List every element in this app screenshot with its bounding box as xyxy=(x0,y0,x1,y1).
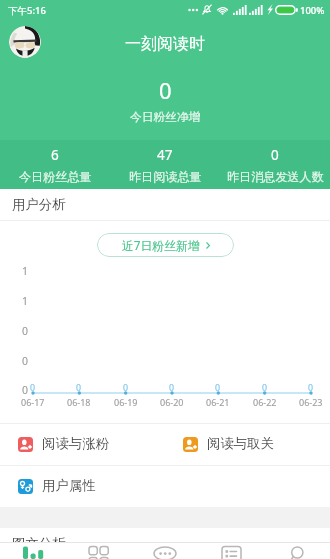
button[interactable]: 近7日粉丝新增 xyxy=(97,233,234,257)
staticText: 用户属性 xyxy=(42,477,96,494)
staticText: 47 xyxy=(157,146,173,164)
staticText: 0 xyxy=(262,382,268,394)
button[interactable]: Messages xyxy=(132,545,198,559)
button[interactable]: List xyxy=(198,545,264,559)
staticText: 下午5:16 xyxy=(8,4,46,17)
staticText: 06-23 xyxy=(299,396,323,408)
button[interactable]: Search xyxy=(264,545,330,559)
staticText: 0 xyxy=(308,382,314,394)
staticText: 1 xyxy=(22,294,29,308)
staticText: 近7日粉丝新增 xyxy=(122,237,200,253)
staticText: 0 xyxy=(123,382,129,394)
staticText: 0 xyxy=(159,75,172,105)
staticText: 阅读与取关 xyxy=(207,435,274,452)
button[interactable]: Profile xyxy=(9,26,41,58)
staticText: 06-18 xyxy=(67,396,91,408)
staticText: 昨日消息发送人数 xyxy=(227,169,324,184)
staticText: 阅读与涨粉 xyxy=(42,435,109,452)
button[interactable]: Statistics xyxy=(0,545,66,559)
staticText: 6 xyxy=(51,146,59,164)
button[interactable]: 47 xyxy=(110,146,220,184)
staticText: 0 xyxy=(22,354,29,368)
staticText: 一刻阅读时 xyxy=(125,34,205,54)
staticText: 今日粉丝净增 xyxy=(130,110,201,125)
staticText: 0 xyxy=(22,383,29,397)
staticText: 06-20 xyxy=(160,396,184,408)
staticText: 今日粉丝总量 xyxy=(19,169,92,184)
button[interactable]: 阅读与涨粉 xyxy=(0,424,165,465)
staticText: 0 xyxy=(169,382,175,394)
staticText: 用户分析 xyxy=(12,196,66,213)
staticText: 06-21 xyxy=(206,396,230,408)
staticText: 06-19 xyxy=(114,396,138,408)
staticText: 昨日阅读总量 xyxy=(129,169,202,184)
staticText: 0 xyxy=(76,382,82,394)
button[interactable]: 用户属性 xyxy=(0,466,165,507)
button[interactable]: 6 xyxy=(0,146,110,184)
staticText: 0 xyxy=(271,146,279,164)
staticText: 0 xyxy=(22,324,29,338)
staticText: 100% xyxy=(300,4,325,17)
button[interactable]: 0 xyxy=(220,146,330,184)
staticText: 06-22 xyxy=(253,396,277,408)
staticText: 06-17 xyxy=(21,396,45,408)
staticText: 0 xyxy=(30,382,36,394)
staticText: 0 xyxy=(215,382,221,394)
staticText: 1 xyxy=(22,264,29,278)
staticText: 图文分析 xyxy=(12,535,66,542)
button[interactable]: Apps xyxy=(66,545,132,559)
button[interactable]: 阅读与取关 xyxy=(165,424,330,465)
